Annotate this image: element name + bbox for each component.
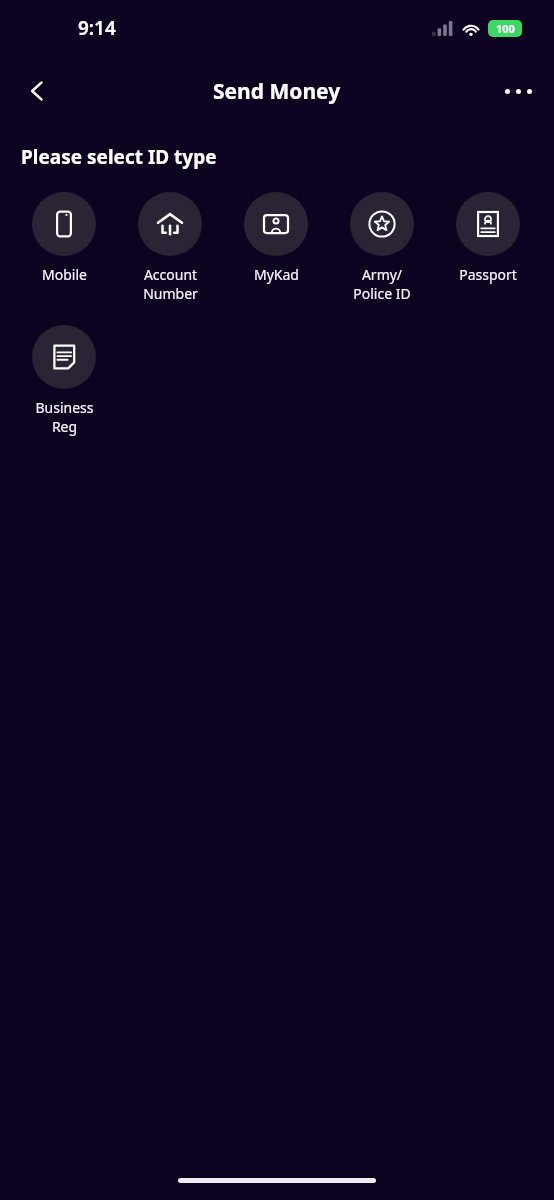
button[interactable]: Army/ Police ID: [329, 192, 435, 303]
staticText: 9:14: [78, 15, 116, 41]
staticText: Send Money: [213, 77, 341, 106]
staticText: Business Reg: [35, 398, 94, 436]
staticText: Please select ID type: [21, 144, 217, 170]
staticText: Passport: [459, 265, 517, 284]
staticText: Mobile: [42, 265, 87, 284]
button[interactable]: Business Reg: [11, 325, 117, 436]
button[interactable]: Back: [14, 68, 60, 114]
staticText: 100: [496, 21, 515, 36]
staticText: Army/ Police ID: [353, 265, 411, 303]
staticText: MyKad: [254, 265, 299, 284]
button[interactable]: Account Number: [117, 192, 223, 303]
staticText: Account Number: [143, 265, 198, 303]
button[interactable]: Mobile: [11, 192, 117, 284]
button[interactable]: Passport: [435, 192, 541, 284]
button[interactable]: MyKad: [223, 192, 329, 284]
button[interactable]: More options: [496, 69, 540, 113]
